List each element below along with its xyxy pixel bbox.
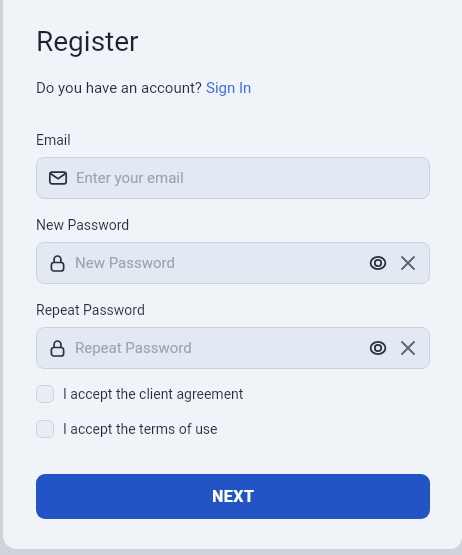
button[interactable]: Repeat Password — [36, 327, 430, 369]
button[interactable] — [399, 254, 417, 272]
staticText: Repeat Password — [75, 339, 367, 357]
staticText: Register — [36, 25, 139, 58]
button[interactable]: I accept the client agreement — [36, 385, 244, 403]
button[interactable] — [367, 252, 389, 274]
staticText: Sign In — [206, 79, 252, 97]
staticText: I accept the client agreement — [63, 386, 244, 402]
staticText: Do you have an account? — [36, 79, 206, 97]
staticText: New Password — [36, 217, 130, 233]
button[interactable] — [399, 339, 417, 357]
button[interactable]: New Password — [36, 242, 430, 284]
staticText: Repeat Password — [36, 302, 145, 318]
button[interactable]: Enter your email — [36, 157, 430, 199]
button[interactable]: I accept the terms of use — [36, 420, 218, 438]
staticText: Enter your email — [76, 169, 417, 187]
staticText: NEXT — [212, 487, 255, 506]
button[interactable]: Sign In — [206, 79, 252, 97]
staticText: New Password — [75, 254, 367, 272]
staticText: Email — [36, 132, 71, 148]
button[interactable]: NEXT — [36, 474, 430, 519]
button[interactable] — [367, 337, 389, 359]
staticText: I accept the terms of use — [63, 421, 218, 437]
